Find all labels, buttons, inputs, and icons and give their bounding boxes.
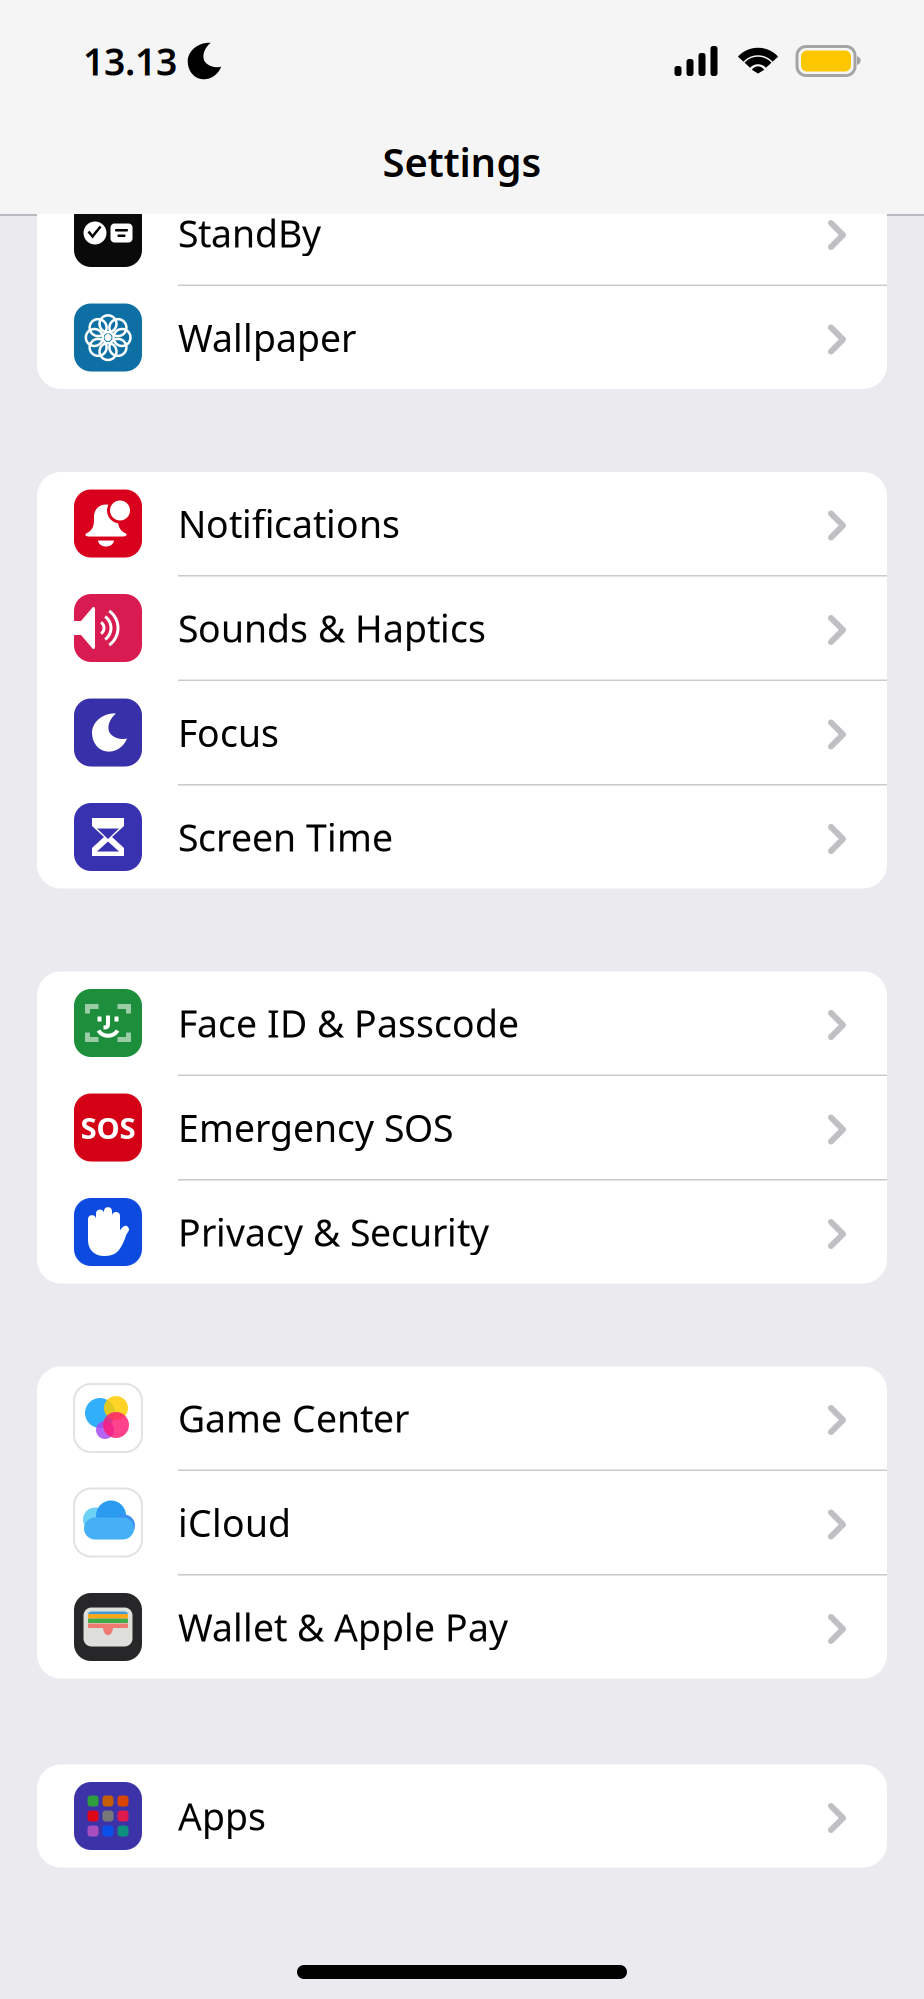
button[interactable]: Sounds & Haptics [37,576,887,679]
staticText: Focus [178,708,279,757]
staticText: 13.13 [83,36,177,86]
staticText: Sounds & Haptics [178,603,486,653]
button[interactable]: Focus [37,681,887,784]
staticText: Privacy & Security [178,1207,489,1257]
staticText: Screen Time [178,812,393,862]
staticText: Settings [382,135,541,188]
button[interactable]: Apps [37,1764,887,1867]
staticText: Face ID & Passcode [178,998,519,1048]
staticText: iCloud [178,1498,291,1547]
staticText: StandBy [178,208,321,258]
button[interactable]: Notifications [37,472,887,575]
button[interactable]: Wallpaper [37,286,887,389]
staticText: SOS [80,1108,135,1147]
button[interactable]: StandBy [37,181,887,284]
button[interactable]: Screen Time [37,785,887,888]
staticText: Apps [178,1791,266,1841]
button[interactable]: Face ID & Passcode [37,971,887,1074]
button[interactable]: Wallet & Apple Pay [37,1575,887,1678]
button[interactable]: Privacy & Security [37,1180,887,1283]
staticText: Notifications [178,499,400,548]
button[interactable]: SOS [37,1076,887,1179]
button[interactable]: iCloud [37,1471,887,1574]
staticText: Wallpaper [178,313,356,362]
button[interactable]: Game Center [37,1366,887,1469]
staticText: Game Center [178,1393,409,1443]
staticText: Emergency SOS [178,1103,453,1152]
staticText: Wallet & Apple Pay [178,1602,508,1652]
